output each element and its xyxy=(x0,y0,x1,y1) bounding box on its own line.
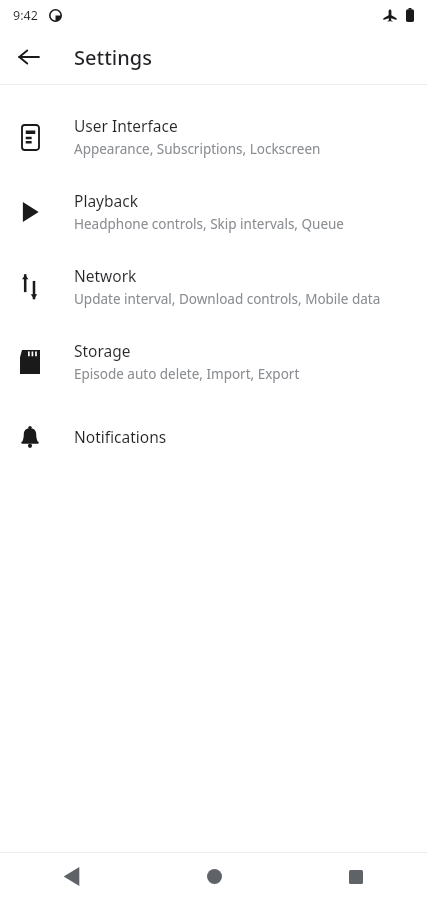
staticText: Network xyxy=(74,265,137,286)
staticText: Settings xyxy=(74,44,152,71)
button[interactable]: Network xyxy=(0,249,427,324)
staticText: Headphone controls, Skip intervals, Queu… xyxy=(74,215,344,233)
button[interactable]: Storage xyxy=(0,324,427,399)
button[interactable]: Back xyxy=(9,37,49,77)
staticText: 9:42 xyxy=(13,7,38,24)
button[interactable]: Notifications xyxy=(0,399,427,474)
staticText: Update interval, Download controls, Mobi… xyxy=(74,290,381,308)
staticText: Episode auto delete, Import, Export xyxy=(74,365,300,383)
staticText: Playback xyxy=(74,190,138,211)
button[interactable]: Playback xyxy=(0,174,427,249)
button[interactable]: Back xyxy=(0,853,143,900)
staticText: Storage xyxy=(74,340,131,361)
button[interactable]: Home xyxy=(143,853,285,900)
staticText: User Interface xyxy=(74,115,178,136)
button[interactable]: User Interface xyxy=(0,99,427,174)
button[interactable]: Recent apps xyxy=(285,853,427,900)
staticText: Appearance, Subscriptions, Lockscreen xyxy=(74,140,321,158)
staticText: Notifications xyxy=(74,426,167,447)
